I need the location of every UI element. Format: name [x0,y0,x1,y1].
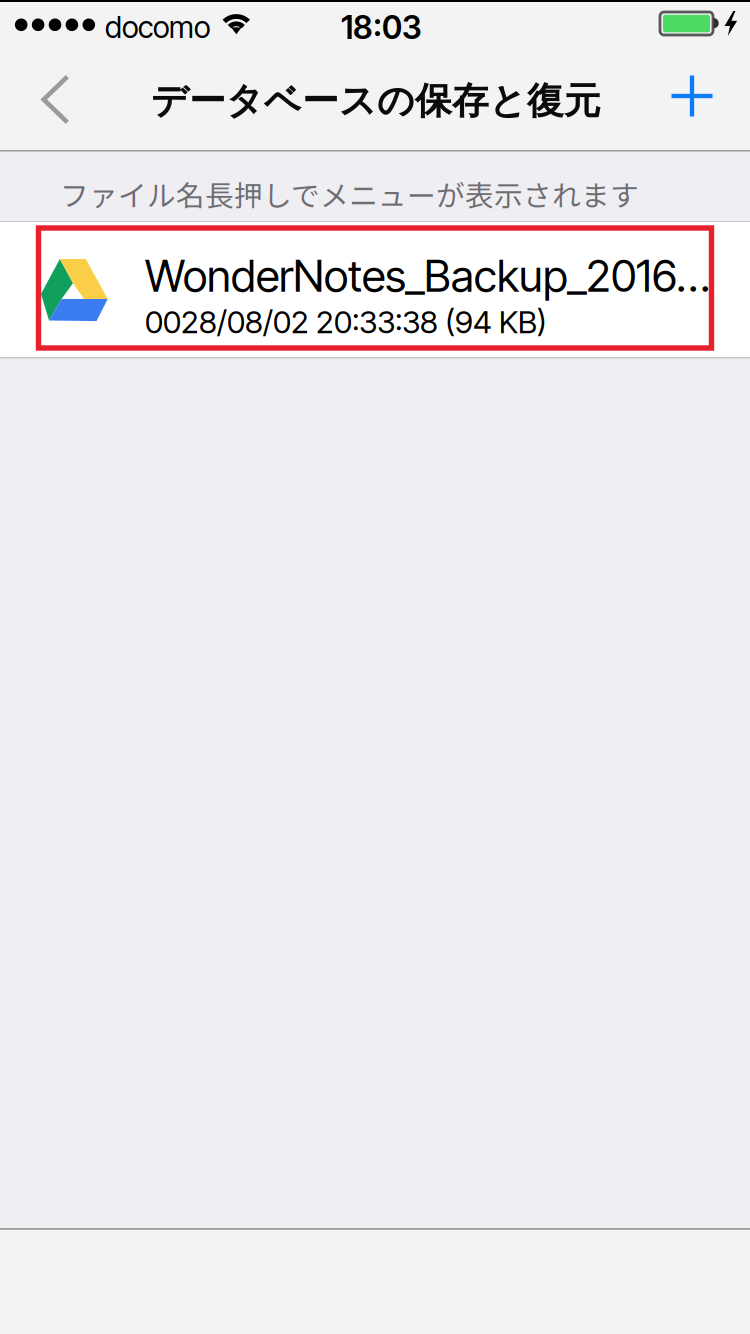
staticText: docomo [105,9,210,45]
button[interactable]: WonderNotes_Backup_2016… [0,222,750,357]
staticText: 18:03 [341,8,422,47]
staticText: データベースの保存と復元 [151,78,601,124]
staticText: WonderNotes_Backup_2016… [145,249,710,302]
staticText: ファイル名長押しでメニューが表示されます [60,173,639,214]
staticText: 0028/08/02 20:33:38 (94 KB) [145,303,547,341]
button[interactable]: Add [640,53,744,141]
button[interactable]: Back [0,55,100,143]
